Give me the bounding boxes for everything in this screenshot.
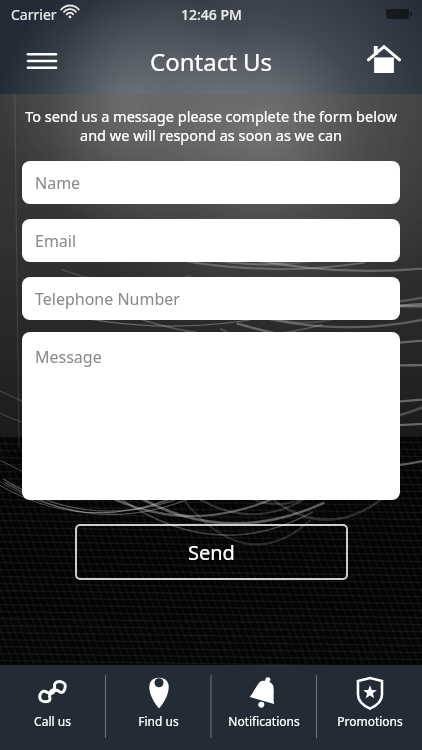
staticText: Send [188,539,235,566]
button[interactable]: Telephone Number [22,277,400,320]
button[interactable]: Notifications [211,665,316,750]
staticText: Name [35,172,81,194]
button[interactable]: Send [75,524,348,580]
staticText: Telephone Number [35,288,180,310]
staticText: Email [35,230,77,252]
staticText: Promotions [337,713,403,729]
staticText: Carrier [11,5,57,24]
staticText: Message [35,346,102,368]
button[interactable]: Home [358,35,410,87]
button[interactable]: Name [22,161,400,204]
button[interactable]: Message [22,332,400,500]
staticText: 12:46 PM [181,5,242,24]
staticText: Contact Us [150,45,273,78]
button[interactable]: Menu [14,33,70,89]
button[interactable]: Promotions [317,665,422,750]
staticText: Find us [138,713,179,729]
staticText: To send us a message please complete the… [22,106,400,145]
button[interactable]: Find us [106,665,211,750]
button[interactable]: Email [22,219,400,262]
button[interactable]: Call us [0,665,105,750]
staticText: Notifications [228,713,300,729]
staticText: Call us [34,713,71,729]
